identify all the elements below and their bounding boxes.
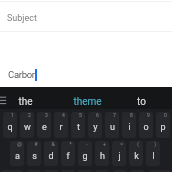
button[interactable] xyxy=(156,112,170,138)
staticText: y xyxy=(93,122,98,133)
button[interactable] xyxy=(10,141,24,166)
staticText: 8 xyxy=(130,112,133,118)
staticText: e xyxy=(42,122,47,133)
staticText: p xyxy=(160,122,166,133)
staticText: w xyxy=(24,122,31,133)
button[interactable] xyxy=(54,112,68,138)
staticText: + xyxy=(103,141,106,147)
staticText: 9 xyxy=(147,112,150,118)
staticText: 6 xyxy=(96,112,99,118)
staticText: d xyxy=(48,151,54,162)
staticText: u xyxy=(110,122,115,133)
button[interactable]: Subject xyxy=(0,2,172,31)
button[interactable] xyxy=(61,141,75,166)
staticText: 2 xyxy=(28,112,31,118)
button[interactable] xyxy=(3,112,17,138)
button[interactable] xyxy=(105,112,119,138)
button[interactable] xyxy=(122,112,136,138)
staticText: s xyxy=(32,151,37,162)
button[interactable] xyxy=(88,112,102,138)
button[interactable]: Carbon xyxy=(0,32,172,87)
staticText: & xyxy=(51,141,55,147)
staticText: t xyxy=(77,122,80,133)
staticText: i xyxy=(128,122,131,133)
staticText: Subject xyxy=(7,13,37,24)
staticText: @ xyxy=(17,141,22,147)
button[interactable] xyxy=(78,141,92,166)
button[interactable] xyxy=(71,112,85,138)
staticText: h xyxy=(100,151,105,162)
staticText: 0 xyxy=(164,112,167,118)
button[interactable] xyxy=(37,112,51,138)
button[interactable]: theme xyxy=(55,93,119,111)
staticText: ) xyxy=(154,141,156,147)
staticText: the xyxy=(18,96,33,108)
staticText: theme xyxy=(73,96,102,108)
staticText: a xyxy=(15,151,20,162)
staticText: - xyxy=(86,141,88,147)
button[interactable] xyxy=(20,112,34,138)
button[interactable]: to xyxy=(109,93,172,111)
staticText: k xyxy=(134,151,139,162)
staticText: 3 xyxy=(45,112,48,118)
staticText: f xyxy=(66,151,70,162)
staticText: Carbon xyxy=(8,69,37,80)
staticText: 7 xyxy=(113,112,116,118)
button[interactable] xyxy=(95,141,109,166)
staticText: j xyxy=(118,151,121,162)
staticText: 4 xyxy=(62,112,65,118)
button[interactable] xyxy=(27,141,41,166)
staticText: o xyxy=(143,122,149,133)
staticText: r xyxy=(59,122,63,133)
staticText: ( xyxy=(137,141,139,147)
button[interactable] xyxy=(44,141,58,166)
staticText: 1 xyxy=(11,112,14,118)
staticText: q xyxy=(7,122,13,133)
button[interactable] xyxy=(139,112,153,138)
staticText: = xyxy=(120,141,123,147)
staticText: g xyxy=(82,151,88,162)
staticText: l xyxy=(152,151,155,162)
staticText: to xyxy=(137,96,146,108)
button[interactable] xyxy=(129,141,143,166)
staticText: # xyxy=(34,141,38,147)
button[interactable] xyxy=(112,141,126,166)
staticText: * xyxy=(69,141,72,147)
button[interactable]: the xyxy=(0,93,57,111)
button[interactable] xyxy=(146,141,160,166)
staticText: 5 xyxy=(79,112,82,118)
